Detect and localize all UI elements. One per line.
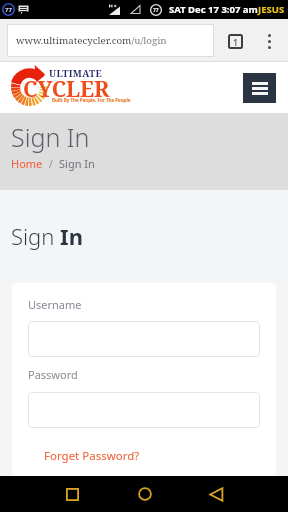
staticText: JESUS bbox=[258, 3, 285, 16]
staticText: / bbox=[43, 156, 59, 171]
button[interactable]: Back bbox=[180, 476, 252, 512]
staticText: Sign In bbox=[11, 120, 90, 154]
button[interactable] bbox=[28, 321, 260, 357]
button[interactable]: Tabs bbox=[222, 28, 248, 54]
button[interactable] bbox=[28, 392, 260, 428]
staticText: Password bbox=[28, 367, 78, 382]
staticText: Built By The People, For The People bbox=[52, 97, 131, 103]
button[interactable]: Forget Password? bbox=[44, 448, 140, 464]
button[interactable]: More options bbox=[256, 28, 282, 54]
staticText: ULTIMATE bbox=[49, 67, 103, 80]
staticText: www.ultimatecycler.com/u/login bbox=[16, 34, 167, 47]
staticText: SAT Dec 17 3:07 am bbox=[169, 3, 258, 16]
button[interactable]: Recent apps bbox=[36, 476, 108, 512]
staticText: 1 bbox=[233, 36, 239, 48]
staticText: CYCLER bbox=[23, 74, 110, 103]
button[interactable]: Menu bbox=[243, 73, 276, 103]
staticText: 77 bbox=[153, 7, 159, 14]
staticText: Sign In bbox=[11, 221, 83, 251]
button[interactable]: www.ultimatecycler.com/u/login bbox=[7, 24, 214, 57]
staticText: 77 bbox=[5, 6, 12, 14]
staticText: Sign In bbox=[59, 156, 95, 171]
button[interactable]: Home bbox=[109, 476, 181, 512]
staticText: Username bbox=[28, 297, 82, 312]
button[interactable]: Home bbox=[11, 156, 43, 171]
